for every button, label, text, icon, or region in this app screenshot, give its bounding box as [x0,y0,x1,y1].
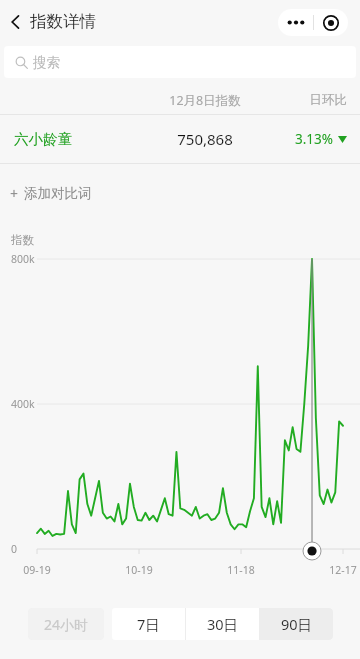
button[interactable]: Back [2,8,30,36]
staticText: 0 [11,542,18,556]
staticText: 指数详情 [30,11,96,32]
staticText: 30日 [207,614,239,634]
button[interactable]: 24小时 [28,608,104,640]
button[interactable]: 7日 [112,608,185,640]
staticText: 24小时 [44,615,89,634]
staticText: + [10,184,19,203]
staticText: 90日 [281,614,313,634]
staticText: 12月8日指数 [140,92,270,109]
staticText: 09-19 [7,563,67,577]
button[interactable]: Close [314,9,348,36]
button[interactable]: 90日 [260,608,333,640]
staticText: 11-18 [211,563,271,577]
staticText: 12-17 [313,563,360,577]
staticText: 添加对比词 [24,185,92,202]
button[interactable]: More [278,9,313,36]
staticText: 3.13% [295,130,334,148]
staticText: 800k [11,252,35,266]
staticText: 指数 [11,233,34,247]
staticText: 六小龄童 [14,130,72,148]
staticText: 日环比 [267,92,347,108]
staticText: 7日 [137,614,160,634]
staticText: 750,868 [140,129,270,149]
button[interactable]: 六小龄童 [0,115,360,163]
staticText: 10-19 [109,563,169,577]
staticText: 400k [11,397,35,411]
button[interactable]: + [10,181,92,205]
button[interactable]: 30日 [186,608,259,640]
button[interactable]: 搜索 [4,46,356,78]
staticText: 搜索 [33,54,60,71]
